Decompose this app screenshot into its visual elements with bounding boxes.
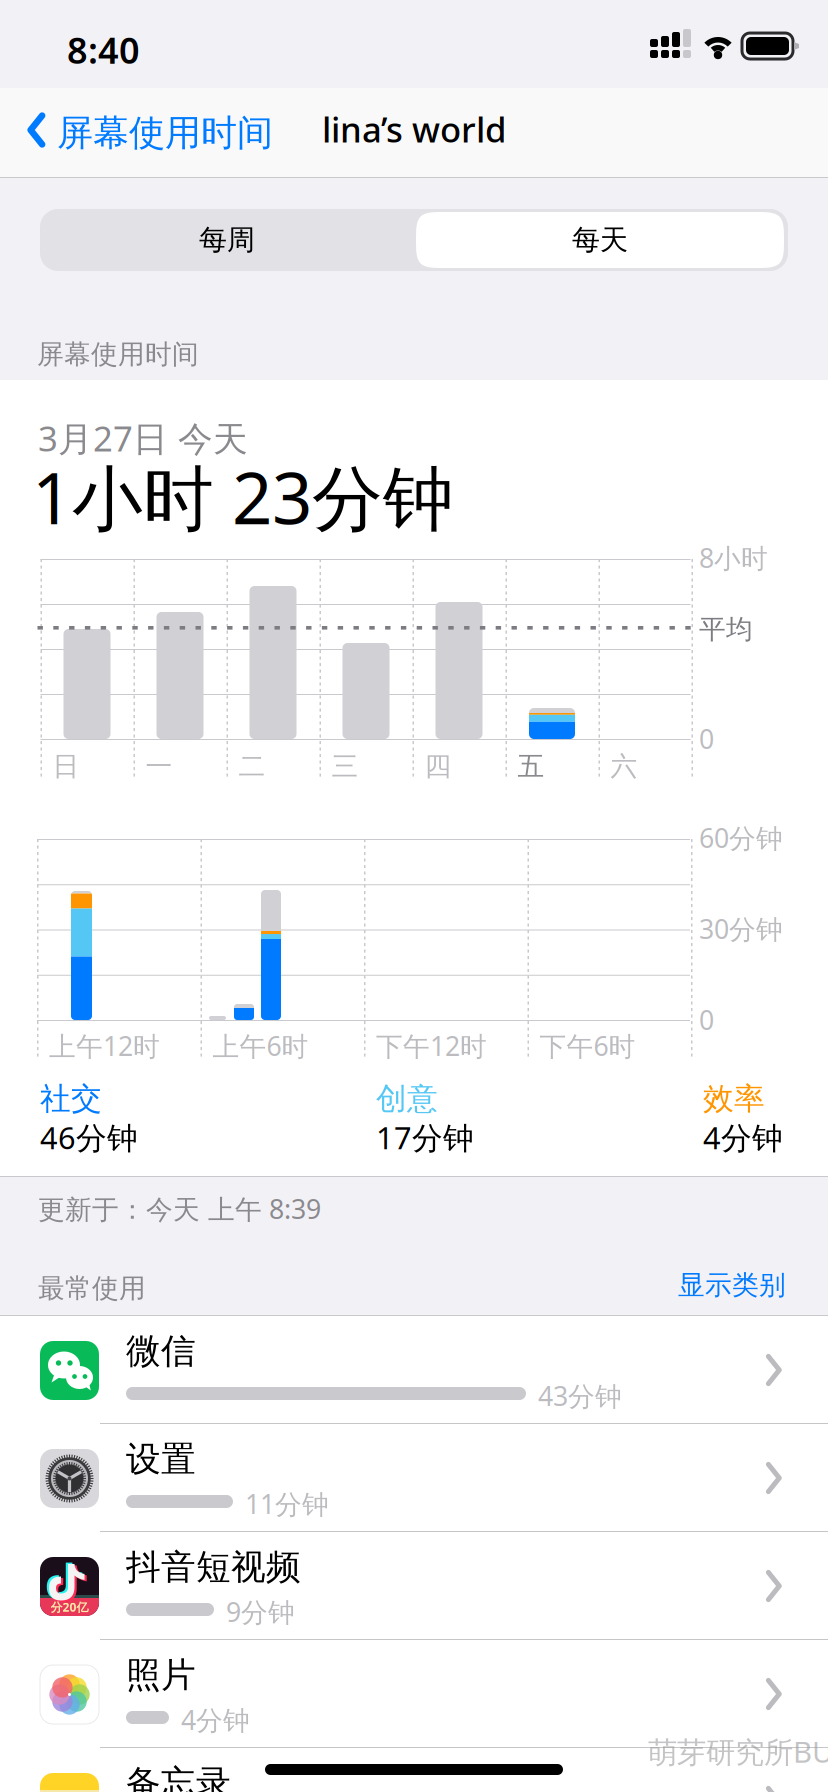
staticText: 每周: [199, 223, 255, 257]
staticText: 11分钟: [245, 1486, 329, 1521]
staticText: 抖音短视频: [126, 1546, 301, 1589]
staticText: 最常使用: [38, 1272, 146, 1305]
button[interactable]: 每天: [416, 212, 784, 268]
staticText: 每天: [572, 223, 628, 257]
staticText: 六: [610, 750, 637, 783]
button[interactable]: 备忘录: [0, 1748, 828, 1792]
staticText: 3月27日 今天: [38, 415, 248, 461]
staticText: 创意: [376, 1080, 438, 1118]
staticText: 8:40: [67, 26, 140, 74]
staticText: 下午6时: [539, 1028, 635, 1063]
staticText: 日: [52, 750, 79, 783]
staticText: 30分钟: [699, 911, 783, 946]
staticText: 1小时 23分钟: [32, 450, 454, 544]
button[interactable]: 分20亿: [0, 1532, 828, 1640]
staticText: 四: [424, 750, 451, 783]
staticText: 17分钟: [376, 1117, 474, 1158]
staticText: 显示类别: [678, 1269, 786, 1301]
button[interactable]: 每周: [40, 209, 414, 271]
staticText: 效率: [703, 1080, 765, 1118]
staticText: 4分钟: [703, 1117, 783, 1158]
staticText: 五: [517, 750, 544, 783]
button[interactable]: 照片: [0, 1640, 828, 1748]
staticText: 上午12时: [49, 1028, 160, 1063]
staticText: 46分钟: [40, 1117, 138, 1158]
staticText: 社交: [40, 1080, 102, 1118]
staticText: 60分钟: [699, 820, 783, 855]
staticText: 9分钟: [226, 1594, 295, 1629]
button[interactable]: 设置: [0, 1424, 828, 1532]
staticText: 设置: [126, 1438, 196, 1481]
staticText: 上午6时: [212, 1028, 308, 1063]
staticText: 43分钟: [538, 1378, 622, 1413]
staticText: 屏幕使用时间: [37, 338, 199, 371]
button[interactable]: 微信: [0, 1316, 828, 1424]
staticText: 屏幕使用时间: [57, 111, 273, 155]
staticText: 8小时: [699, 540, 768, 575]
staticText: 二: [238, 750, 265, 783]
staticText: lina’s world: [322, 106, 506, 152]
staticText: 照片: [126, 1654, 196, 1697]
button[interactable]: 屏幕使用时间: [0, 88, 250, 176]
staticText: 萌芽研究所BUD: [648, 1732, 828, 1771]
staticText: 三: [331, 750, 358, 783]
staticText: 一: [145, 750, 172, 783]
staticText: 下午12时: [376, 1028, 487, 1063]
staticText: 4分钟: [181, 1702, 250, 1737]
staticText: 平均: [699, 613, 753, 646]
staticText: 0: [699, 721, 714, 756]
staticText: 0: [699, 1002, 714, 1037]
button[interactable]: 显示类别: [658, 1259, 786, 1311]
staticText: 分20亿: [50, 1599, 88, 1615]
staticText: 微信: [126, 1330, 196, 1373]
staticText: 更新于：今天 上午 8:39: [38, 1191, 321, 1226]
staticText: 备忘录: [126, 1762, 231, 1792]
